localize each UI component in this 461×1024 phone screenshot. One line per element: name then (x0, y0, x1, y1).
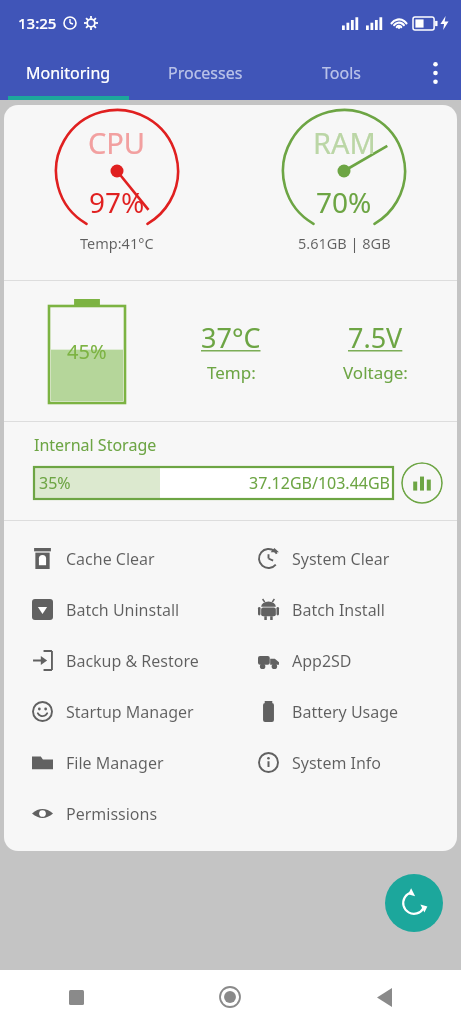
staticText: Processes (168, 62, 243, 84)
staticText: 37°C (201, 319, 261, 356)
button[interactable]: 37°C (159, 319, 303, 384)
button[interactable]: Permissions (4, 788, 230, 839)
staticText: Batch Install (292, 599, 385, 621)
staticText: 7.5V (348, 319, 403, 356)
button[interactable]: Tools (273, 46, 409, 100)
staticText: Cache Clear (66, 548, 155, 570)
staticText: Temp:41°C (80, 233, 154, 253)
staticText: App2SD (292, 650, 352, 672)
staticText: 5.61GB | 8GB (298, 233, 391, 253)
staticText: 13:25 (18, 13, 57, 33)
button[interactable]: Recents (0, 970, 153, 1024)
staticText: Batch Uninstall (66, 599, 180, 621)
button[interactable]: Backup & Restore (4, 635, 230, 686)
button[interactable]: Storage chart (401, 462, 443, 504)
staticText: 35% (39, 472, 71, 494)
staticText: Backup & Restore (66, 650, 199, 672)
staticText: 37.12GB/103.44GB (249, 472, 390, 494)
staticText: Permissions (66, 803, 158, 825)
button[interactable]: App2SD (230, 635, 457, 686)
staticText: 45% (67, 338, 107, 365)
button[interactable]: File Manager (4, 737, 230, 788)
button[interactable]: Cache Clear (4, 533, 230, 584)
staticText: System Clear (292, 548, 390, 570)
staticText: System Info (292, 752, 382, 774)
staticText: Voltage: (343, 361, 408, 384)
button[interactable]: More options (409, 46, 461, 100)
button[interactable]: Back (307, 970, 461, 1024)
staticText: Internal Storage (34, 434, 157, 456)
staticText: CPU (88, 123, 146, 162)
button[interactable]: Batch Install (230, 584, 457, 635)
staticText: 70% (316, 183, 372, 221)
staticText: File Manager (66, 752, 164, 774)
button[interactable]: 7.5V (303, 319, 447, 384)
button[interactable]: Batch Uninstall (4, 584, 230, 635)
button[interactable]: Home (153, 970, 307, 1024)
button[interactable]: 35% (34, 467, 393, 499)
button[interactable]: Monitoring (0, 46, 137, 100)
staticText: RAM (313, 123, 376, 162)
staticText: Startup Manager (66, 701, 194, 723)
button[interactable]: Battery Usage (230, 686, 457, 737)
staticText: Monitoring (26, 62, 111, 84)
staticText: Battery Usage (292, 701, 399, 723)
button[interactable]: Startup Manager (4, 686, 230, 737)
button[interactable]: System Clear (230, 533, 457, 584)
staticText: Temp: (207, 361, 256, 384)
button[interactable]: Processes (137, 46, 273, 100)
button[interactable]: Refresh (385, 874, 443, 932)
staticText: Tools (322, 62, 361, 84)
button[interactable]: System Info (230, 737, 457, 788)
staticText: 97% (89, 183, 145, 221)
